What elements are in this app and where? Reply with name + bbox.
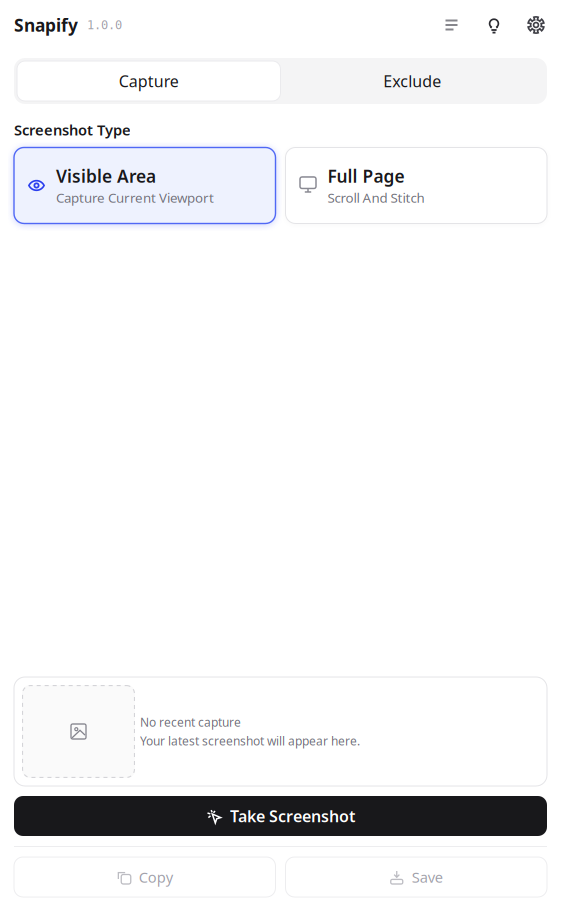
button[interactable]: Visible Area (14, 147, 275, 223)
staticText: Copy (139, 867, 173, 887)
staticText: Capture Current Viewport (56, 189, 214, 206)
button[interactable]: Copy (14, 857, 275, 897)
button[interactable]: Settings (515, 7, 557, 43)
staticText: Snapify (14, 13, 78, 36)
staticText: Exclude (383, 70, 441, 92)
button[interactable]: Save (285, 857, 547, 897)
staticText: Full Page (327, 165, 404, 188)
staticText: Your latest screenshot will appear here. (140, 733, 360, 749)
button[interactable]: Capture (17, 61, 280, 101)
button[interactable]: Tips (473, 7, 515, 43)
staticText: Screenshot Type (14, 120, 131, 139)
staticText: 1.0.0 (87, 18, 122, 32)
button[interactable]: Exclude (280, 61, 544, 101)
staticText: Scroll And Stitch (327, 189, 424, 206)
staticText: Take Screenshot (230, 805, 355, 827)
staticText: Capture (119, 70, 179, 92)
button[interactable]: Format (431, 7, 473, 43)
staticText: Visible Area (56, 165, 156, 188)
staticText: No recent capture (140, 714, 241, 730)
staticText: Save (412, 867, 443, 887)
button[interactable]: Take Screenshot (14, 796, 547, 836)
button[interactable]: Full Page (285, 147, 547, 223)
